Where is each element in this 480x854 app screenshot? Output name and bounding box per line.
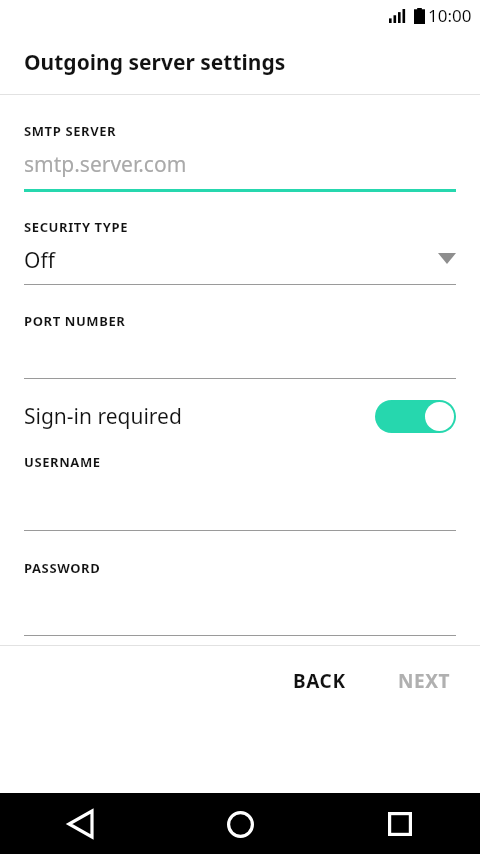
button[interactable]: Sign-in required [24,379,456,453]
button[interactable]: Recent apps [376,800,424,848]
button[interactable]: BACK [279,656,360,706]
staticText: PORT NUMBER [24,312,126,330]
staticText: SMTP SERVER [24,122,117,140]
button[interactable]: smtp.server.com [24,140,456,189]
staticText: Sign-in required [24,402,375,431]
staticText: SECURITY TYPE [24,218,129,236]
button[interactable]: NEXT [384,656,465,706]
staticText: 10:00 [428,4,472,27]
button[interactable]: Back [56,800,104,848]
staticText: NEXT [398,668,451,694]
staticText: BACK [293,668,346,694]
button[interactable]: Off [24,236,456,284]
button[interactable]: Home [216,800,264,848]
staticText: PASSWORD [24,559,101,577]
staticText: Off [24,246,55,275]
staticText: Outgoing server settings [24,48,286,77]
staticText: USERNAME [24,453,101,471]
staticText: smtp.server.com [24,150,187,179]
